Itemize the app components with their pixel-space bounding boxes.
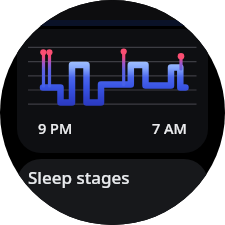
staticText: 9 PM [38, 118, 73, 138]
staticText: Sleep stages [28, 166, 130, 189]
staticText: 7 AM [152, 118, 187, 138]
button[interactable]: Sleep stages [17, 159, 208, 225]
button[interactable]: 9 PM [17, 29, 208, 153]
